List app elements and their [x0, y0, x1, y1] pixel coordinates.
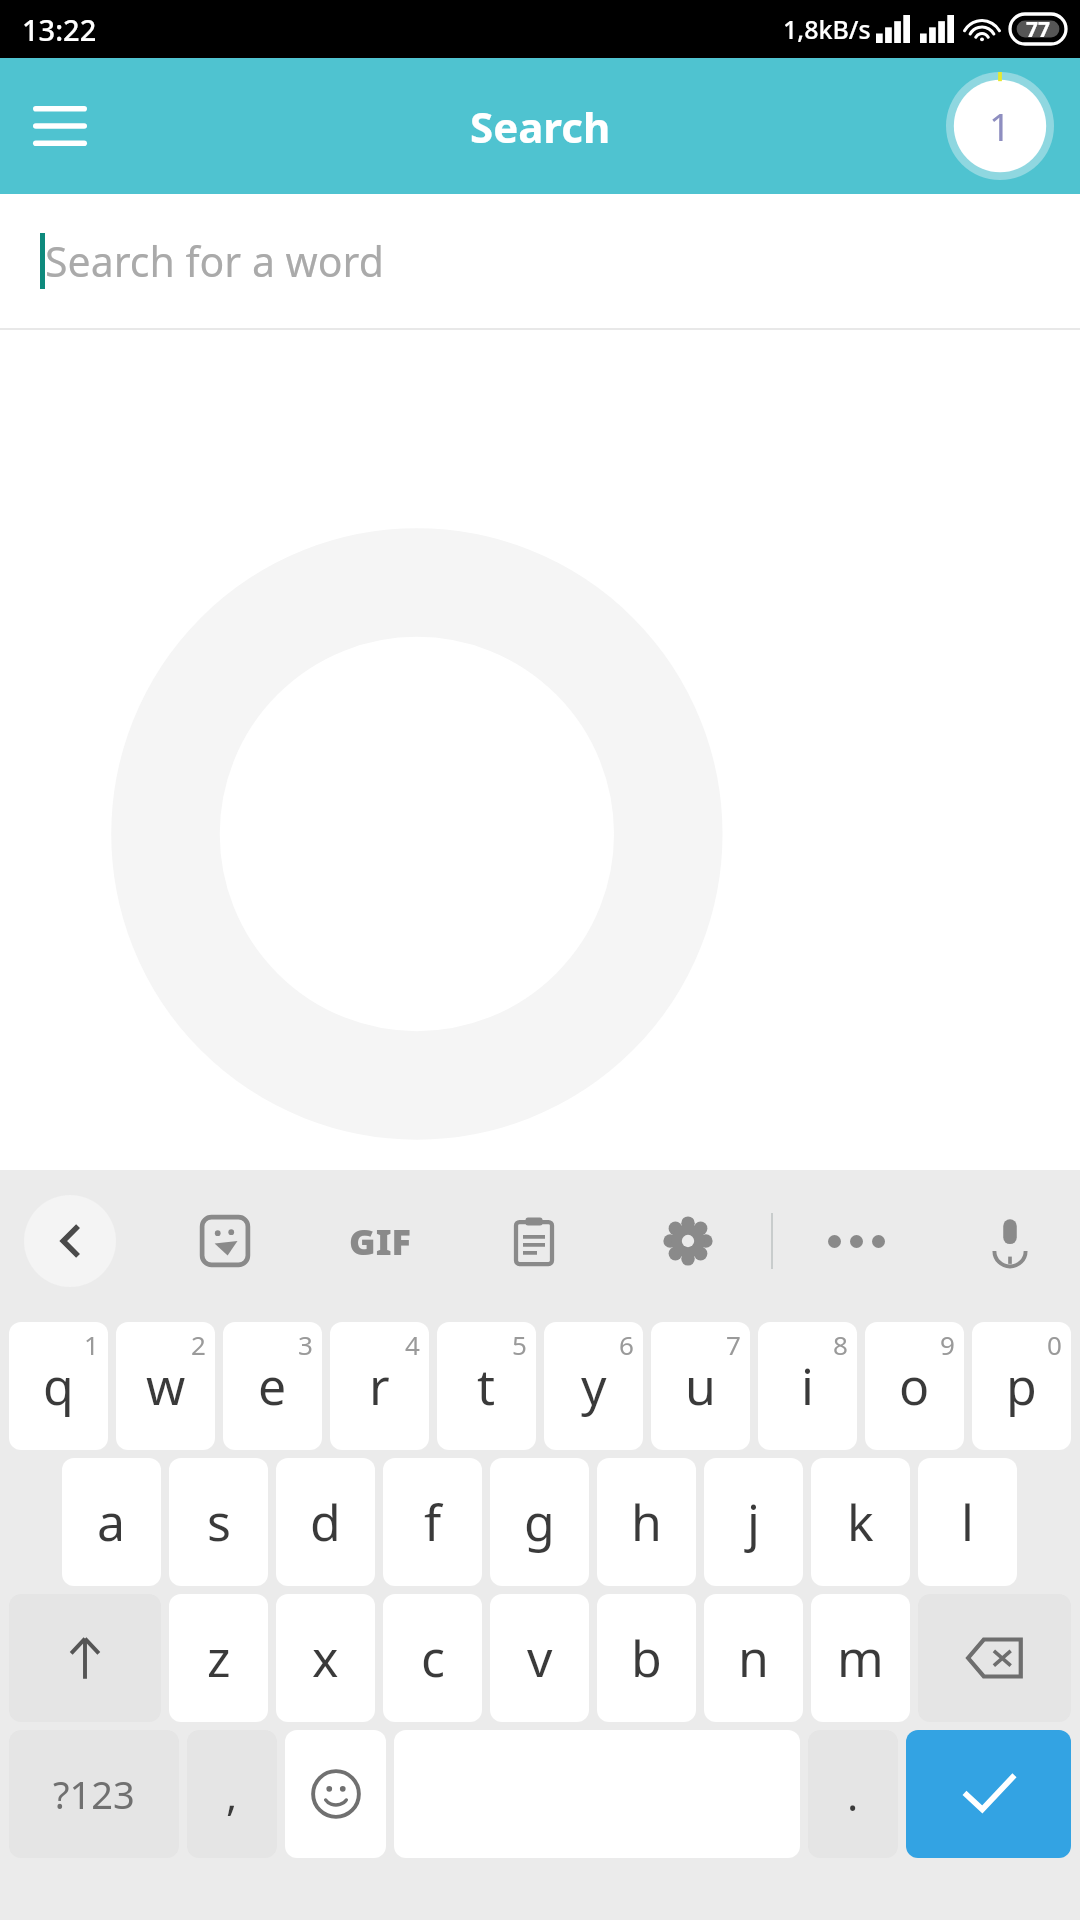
button[interactable]: Quiz progress, 1: [946, 72, 1054, 180]
button[interactable]: Symbols: [9, 1730, 179, 1858]
staticText: 9: [940, 1327, 955, 1362]
staticText: r: [369, 1352, 390, 1420]
staticText: ?123: [53, 1768, 135, 1820]
button[interactable]: k: [811, 1458, 910, 1586]
staticText: l: [961, 1488, 974, 1556]
button[interactable]: y: [544, 1322, 643, 1450]
button[interactable]: h: [597, 1458, 696, 1586]
staticText: k: [847, 1488, 874, 1556]
staticText: p: [1006, 1352, 1037, 1420]
staticText: GIF: [349, 1217, 411, 1266]
button[interactable]: Comma: [187, 1730, 277, 1858]
staticText: 1: [989, 100, 1011, 152]
staticText: u: [685, 1352, 716, 1420]
button[interactable]: q: [9, 1322, 108, 1450]
staticText: 77: [1026, 15, 1051, 44]
staticText: 5: [512, 1327, 527, 1362]
staticText: w: [146, 1352, 186, 1420]
staticText: 7: [726, 1327, 741, 1362]
button[interactable]: Settings: [642, 1195, 734, 1287]
button[interactable]: m: [811, 1594, 910, 1722]
button[interactable]: w: [116, 1322, 215, 1450]
staticText: g: [524, 1488, 555, 1556]
button[interactable]: d: [276, 1458, 375, 1586]
button[interactable]: Emoji: [285, 1730, 386, 1858]
staticText: 8: [833, 1327, 848, 1362]
button[interactable]: i: [758, 1322, 857, 1450]
staticText: 0: [1047, 1327, 1062, 1362]
button[interactable]: Clipboard: [488, 1195, 580, 1287]
staticText: 3: [298, 1327, 313, 1362]
button[interactable]: v: [490, 1594, 589, 1722]
staticText: d: [310, 1488, 341, 1556]
button[interactable]: t: [437, 1322, 536, 1450]
staticText: o: [899, 1352, 930, 1420]
staticText: 13:22: [22, 10, 97, 49]
button[interactable]: Stickers: [179, 1195, 271, 1287]
staticText: Search for a word: [45, 233, 384, 289]
staticText: i: [801, 1352, 814, 1420]
staticText: n: [738, 1624, 769, 1692]
button[interactable]: Backspace: [918, 1594, 1071, 1722]
staticText: j: [747, 1488, 760, 1556]
staticText: x: [312, 1624, 339, 1692]
staticText: 6: [619, 1327, 634, 1362]
button[interactable]: x: [276, 1594, 375, 1722]
button[interactable]: Search for a word: [0, 194, 1080, 328]
staticText: 2: [191, 1327, 206, 1362]
button[interactable]: l: [918, 1458, 1017, 1586]
button[interactable]: z: [169, 1594, 268, 1722]
button[interactable]: p: [972, 1322, 1071, 1450]
staticText: v: [527, 1624, 553, 1692]
staticText: a: [97, 1488, 126, 1556]
staticText: q: [43, 1352, 74, 1420]
staticText: s: [207, 1488, 231, 1556]
staticText: c: [421, 1624, 445, 1692]
button[interactable]: More options: [810, 1195, 902, 1287]
button[interactable]: a: [62, 1458, 161, 1586]
staticText: e: [258, 1352, 287, 1420]
button[interactable]: u: [651, 1322, 750, 1450]
staticText: 1,8kB/s: [783, 12, 871, 46]
staticText: ,: [226, 1766, 238, 1823]
staticText: 1: [84, 1327, 99, 1362]
staticText: m: [837, 1624, 884, 1692]
staticText: .: [847, 1766, 859, 1823]
staticText: 4: [405, 1327, 420, 1362]
staticText: t: [477, 1352, 496, 1420]
button[interactable]: GIF: [334, 1195, 426, 1287]
button[interactable]: Open navigation menu: [16, 82, 104, 170]
button[interactable]: n: [704, 1594, 803, 1722]
staticText: f: [424, 1488, 442, 1556]
staticText: h: [631, 1488, 662, 1556]
button[interactable]: s: [169, 1458, 268, 1586]
button[interactable]: f: [383, 1458, 482, 1586]
button[interactable]: Period: [808, 1730, 898, 1858]
staticText: y: [581, 1352, 607, 1420]
button[interactable]: o: [865, 1322, 964, 1450]
button[interactable]: Enter: [906, 1730, 1071, 1858]
staticText: b: [631, 1624, 662, 1692]
button[interactable]: Close toolbar: [24, 1195, 116, 1287]
staticText: z: [207, 1624, 231, 1692]
button[interactable]: Shift: [9, 1594, 161, 1722]
button[interactable]: r: [330, 1322, 429, 1450]
staticText: Search: [470, 98, 611, 155]
button[interactable]: j: [704, 1458, 803, 1586]
button[interactable]: e: [223, 1322, 322, 1450]
button[interactable]: c: [383, 1594, 482, 1722]
button[interactable]: Voice input: [964, 1195, 1056, 1287]
button[interactable]: b: [597, 1594, 696, 1722]
button[interactable]: g: [490, 1458, 589, 1586]
